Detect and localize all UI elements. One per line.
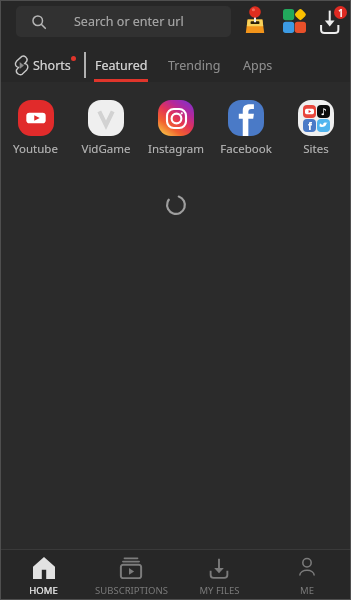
staticText: Trending xyxy=(168,57,221,74)
button[interactable]: Downloads xyxy=(317,3,350,36)
button[interactable]: HOME xyxy=(0,550,87,600)
staticText: Facebook xyxy=(220,141,272,157)
staticText: Apps xyxy=(243,57,273,74)
button[interactable]: Apps xyxy=(243,45,273,79)
button[interactable]: ♪ xyxy=(281,98,351,159)
button[interactable]: MY FILES xyxy=(175,550,263,600)
button[interactable]: Apps xyxy=(277,4,311,38)
button[interactable]: Featured xyxy=(94,45,148,82)
button[interactable]: Search or enter url xyxy=(16,6,231,37)
staticText: VidGame xyxy=(81,141,131,157)
button[interactable]: Games xyxy=(237,1,272,36)
button[interactable]: ME xyxy=(263,550,351,600)
button[interactable]: Facebook xyxy=(211,98,281,159)
button[interactable]: SUBSCRIPTIONS xyxy=(87,550,175,600)
staticText: HOME xyxy=(29,584,58,597)
staticText: 1 xyxy=(338,6,344,19)
button[interactable]: Instagram xyxy=(141,98,211,159)
staticText: Sites xyxy=(303,141,329,157)
button[interactable]: Youtube xyxy=(0,98,71,159)
staticText: SUBSCRIPTIONS xyxy=(95,584,168,597)
staticText: ♪ xyxy=(321,107,327,117)
staticText: Instagram xyxy=(148,141,204,157)
staticText: f xyxy=(308,119,312,132)
button[interactable]: VidGame xyxy=(71,98,141,159)
button[interactable]: Trending xyxy=(168,45,221,79)
staticText: Featured xyxy=(95,57,148,74)
staticText: Youtube xyxy=(13,141,58,157)
staticText: ME xyxy=(300,584,314,597)
staticText: MY FILES xyxy=(199,584,240,597)
staticText: Shorts xyxy=(33,57,71,74)
button[interactable]: Shorts xyxy=(14,54,76,76)
staticText: Search or enter url xyxy=(74,13,184,30)
